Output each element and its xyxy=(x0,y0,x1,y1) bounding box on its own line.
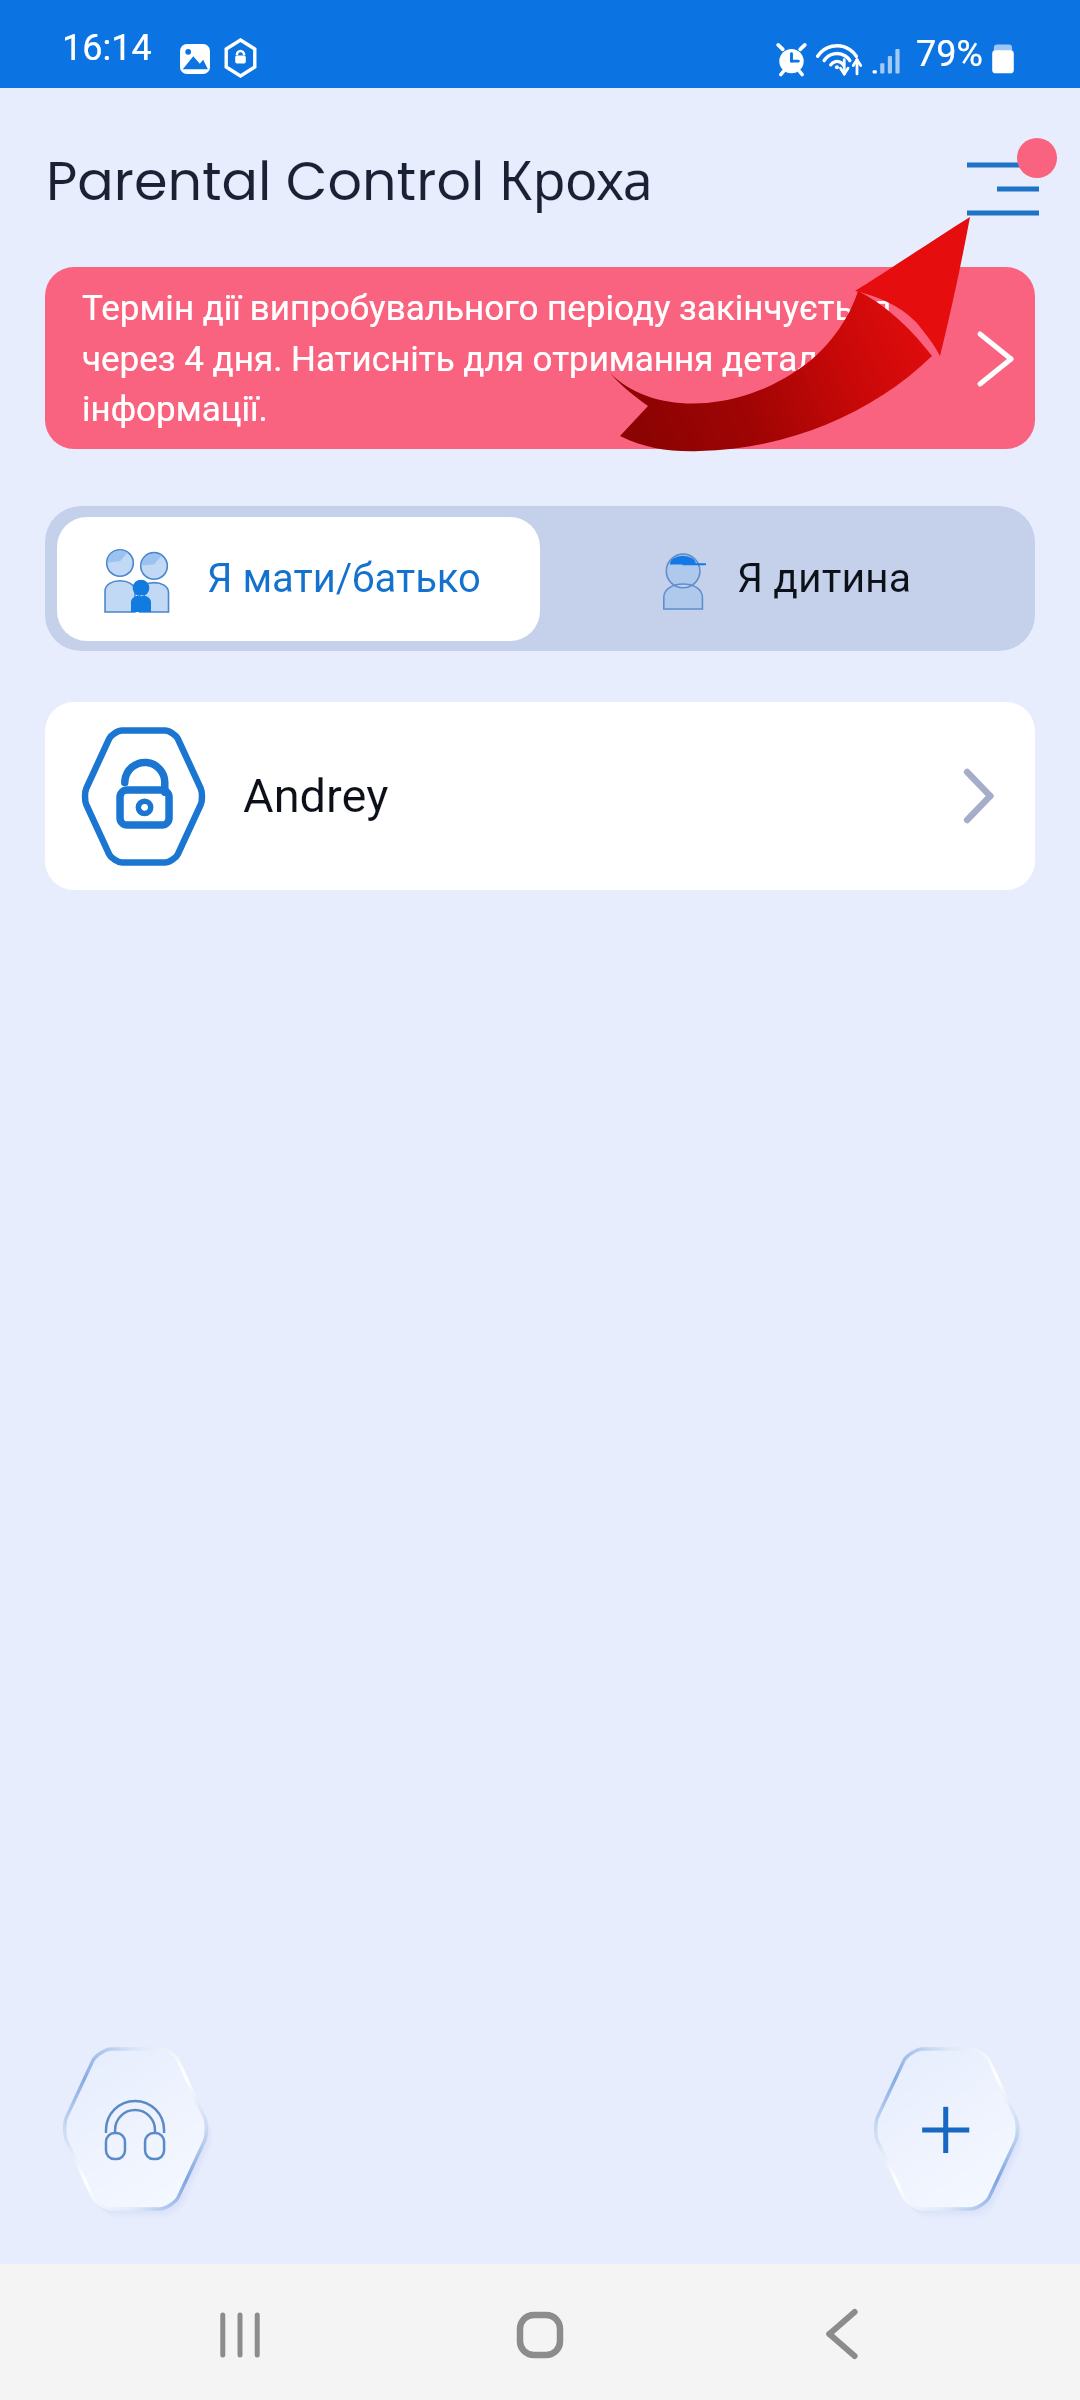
button[interactable]: Я мати/батько xyxy=(57,517,540,641)
button[interactable]: Add child xyxy=(868,2045,1025,2213)
staticText: Parental Control Кроха xyxy=(46,142,653,219)
staticText: Andrey xyxy=(243,768,389,823)
button[interactable]: Home xyxy=(492,2287,588,2383)
button[interactable]: Я дитина xyxy=(540,506,1035,651)
button[interactable]: Back xyxy=(794,2286,890,2382)
button[interactable]: Andrey xyxy=(45,702,1035,890)
button[interactable]: Recents xyxy=(192,2287,288,2383)
staticText: Термін дії випробувального періоду закін… xyxy=(82,288,925,429)
staticText: 79% xyxy=(916,33,983,75)
button[interactable]: Menu xyxy=(947,130,1061,230)
staticText: Я мати/батько xyxy=(207,555,481,602)
staticText: 16:14 xyxy=(62,27,152,69)
button[interactable]: Термін дії випробувального періоду закін… xyxy=(45,267,1035,449)
button[interactable]: Support xyxy=(57,2045,214,2213)
staticText: Я дитина xyxy=(737,554,912,602)
